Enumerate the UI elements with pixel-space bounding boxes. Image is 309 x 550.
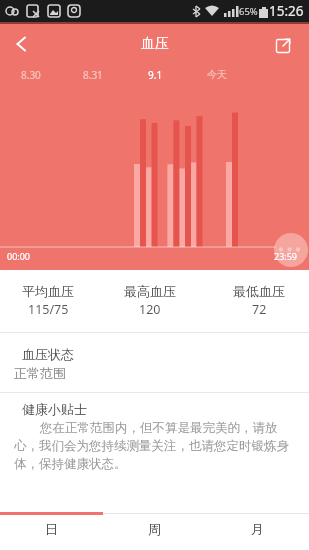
button[interactable]: 周 [103, 515, 206, 550]
staticText: 115/75 [28, 301, 69, 318]
button[interactable]: 月 [206, 515, 309, 550]
button[interactable]: 最高血压 [124, 270, 176, 332]
staticText: 平均血压 [22, 283, 74, 299]
button[interactable]: 平均血压 [22, 270, 74, 332]
staticText: 最低血压 [233, 283, 285, 299]
staticText: 120 [139, 301, 161, 318]
staticText: 65% [239, 5, 258, 18]
staticText: 8.30 [21, 68, 41, 82]
staticText: 今天 [207, 68, 227, 81]
button[interactable]: 最低血压 [233, 270, 285, 332]
staticText: 72 [252, 301, 267, 318]
staticText: 心，我们会为您持续测量关注，也请您定时锻炼身 [14, 438, 289, 454]
staticText: 8.31 [83, 68, 103, 82]
staticText: 9.1 [148, 68, 163, 82]
button[interactable] [265, 24, 309, 64]
staticText: 00:00 [7, 250, 31, 262]
staticText: 日 [45, 521, 58, 537]
staticText: 月 [251, 521, 264, 537]
staticText: 健康小贴士 [22, 401, 87, 417]
staticText: 周 [148, 521, 161, 537]
staticText: 正常范围 [14, 365, 66, 381]
button[interactable] [274, 233, 308, 267]
button[interactable] [0, 24, 40, 64]
button[interactable]: 日 [0, 515, 103, 550]
button[interactable]: 8.30 [0, 64, 62, 94]
button[interactable]: 8.31 [62, 64, 124, 94]
staticText: 体，保持健康状态。 [14, 456, 127, 472]
staticText: 最高血压 [124, 283, 176, 299]
staticText: 您在正常范围内，但不算是最完美的，请放 [40, 420, 278, 436]
staticText: 15:26 [269, 2, 304, 20]
staticText: 血压 [141, 35, 169, 53]
button[interactable]: 今天 [186, 64, 248, 94]
staticText: 血压状态 [22, 346, 74, 362]
staticText: 23:59 [274, 250, 298, 262]
button[interactable]: 9.1 [124, 64, 186, 94]
